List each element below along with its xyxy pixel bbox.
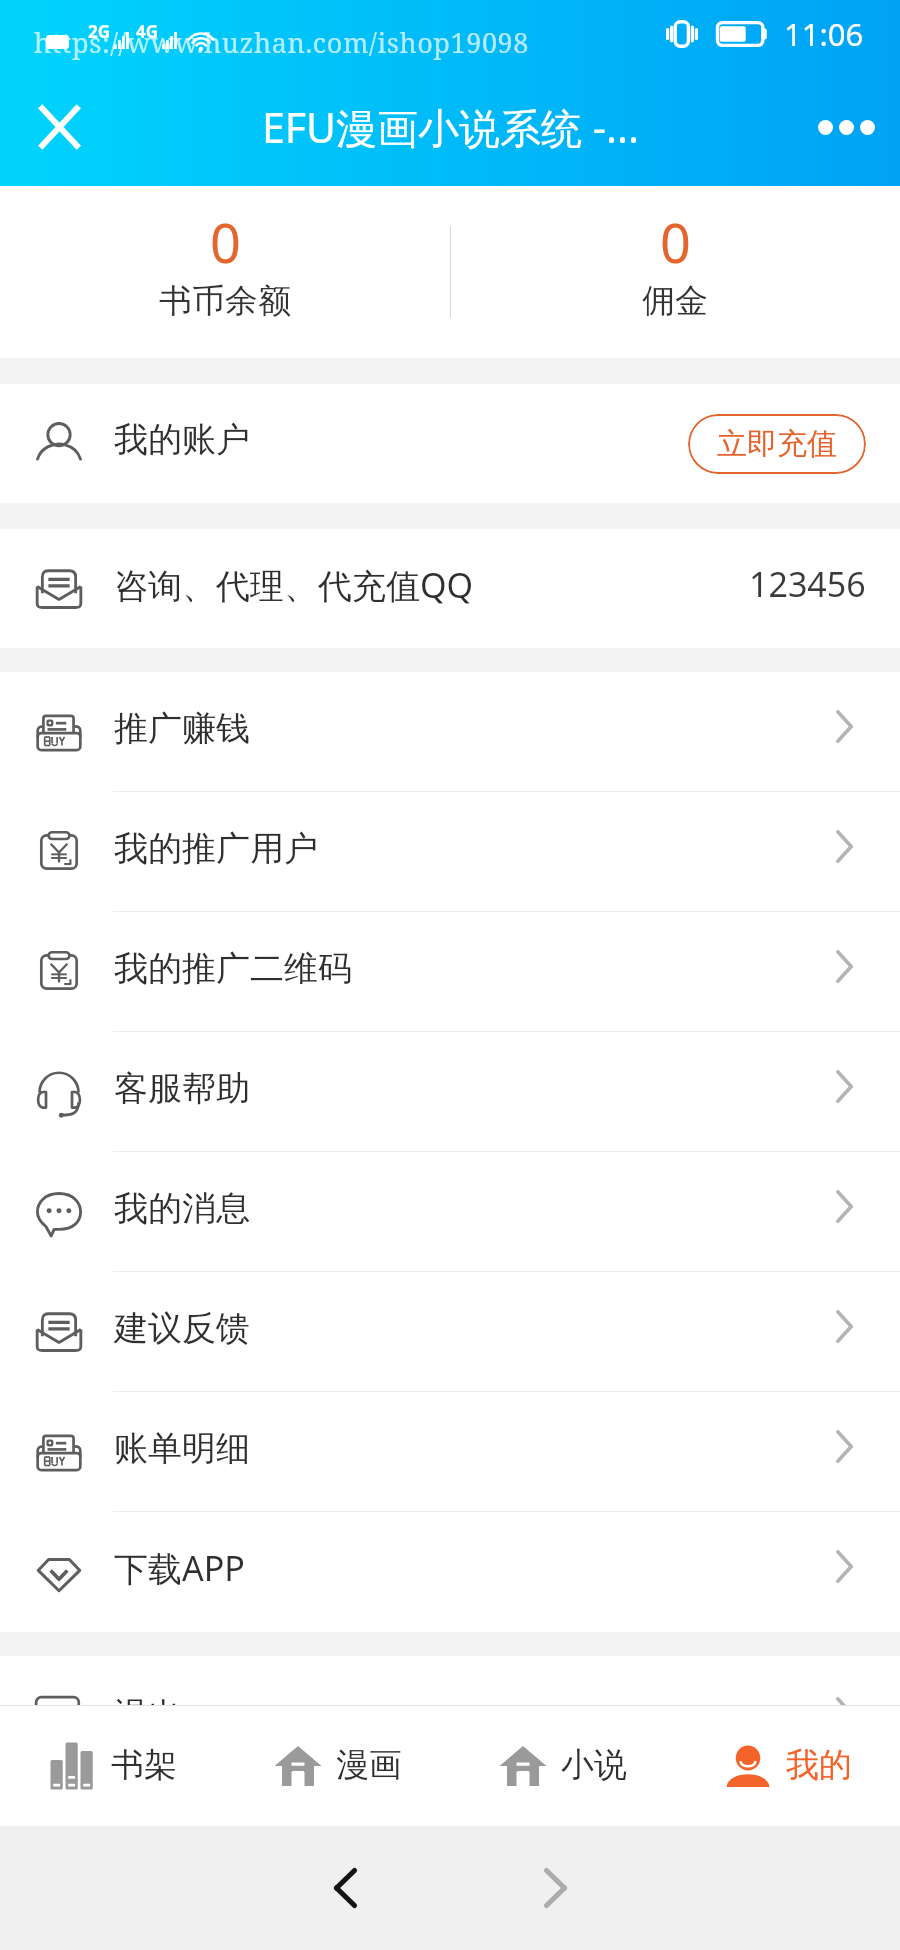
button[interactable]: 我的消息 [0,1152,900,1272]
button[interactable]: 建议反馈 [0,1272,900,1392]
button[interactable]: 退出 [0,1656,900,1705]
button[interactable]: Back [300,1843,390,1933]
staticText: 0 [210,205,241,279]
button[interactable]: 小说 [450,1705,675,1826]
staticText: 书币余额 [159,280,291,322]
staticText: 佣金 [642,280,708,322]
button[interactable]: 我的 [675,1705,900,1826]
button[interactable]: 客服帮助 [0,1032,900,1152]
staticText: 11:06 [784,13,864,55]
staticText: 我的推广二维码 [114,947,352,990]
staticText: 小说 [561,1744,627,1786]
staticText: 客服帮助 [114,1067,250,1110]
staticText: 推广赚钱 [114,707,250,750]
button[interactable]: 漫画 [225,1705,450,1826]
staticText: 4G [136,20,159,43]
button[interactable]: 立即充值 [688,414,866,474]
staticText: 2G [88,20,111,43]
staticText: 账单明细 [114,1427,250,1470]
button[interactable]: 我的推广二维码 [0,912,900,1032]
staticText: 建议反馈 [114,1307,250,1350]
button[interactable]: 下载APP [0,1512,900,1632]
staticText: EFU漫画小说系统 -... [262,99,639,155]
staticText: 我的推广用户 [114,827,318,870]
staticText: 我的账户 [114,418,250,461]
staticText: 咨询、代理、代充值QQ [114,562,474,608]
staticText: 我的消息 [114,1187,250,1230]
staticText: 退出 [114,1694,182,1705]
button[interactable]: 书架 [0,1705,225,1826]
button[interactable]: Close [16,84,102,170]
button[interactable]: 咨询、代理、代充值QQ [0,529,900,648]
staticText: https://www.huzhan.com/ishop19098 [34,24,529,61]
staticText: 书架 [111,1744,177,1786]
button[interactable]: 0 [450,186,900,358]
staticText: 我的 [786,1744,852,1786]
button[interactable]: 推广赚钱 [0,672,900,792]
button[interactable]: 账单明细 [0,1392,900,1512]
button[interactable]: Forward [510,1843,600,1933]
button[interactable]: More options [803,84,889,170]
staticText: 立即充值 [717,425,837,463]
button[interactable]: 我的推广用户 [0,792,900,912]
staticText: 0 [660,205,691,279]
staticText: 下载APP [114,1545,245,1591]
button[interactable]: 0 [0,186,450,358]
button[interactable]: 我的账户 [0,384,900,503]
staticText: 123456 [749,561,866,607]
staticText: 漫画 [336,1744,402,1786]
